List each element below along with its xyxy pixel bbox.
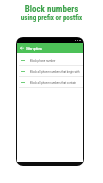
button[interactable]: Block phone number [17,55,83,66]
button[interactable]: Block all phone numbers that contain [17,77,83,88]
button[interactable]: Back [20,46,24,50]
staticText: Block all phone numbers that contain [30,81,77,84]
staticText: Block phone number [30,59,56,62]
staticText: Block all phone numbers that begin with [30,70,80,73]
staticText: using prefix or postfix [0,14,103,22]
button[interactable]: Block all phone numbers that begin with [17,66,83,77]
staticText: Block numbers [0,4,103,15]
staticText: Other options [26,48,42,51]
